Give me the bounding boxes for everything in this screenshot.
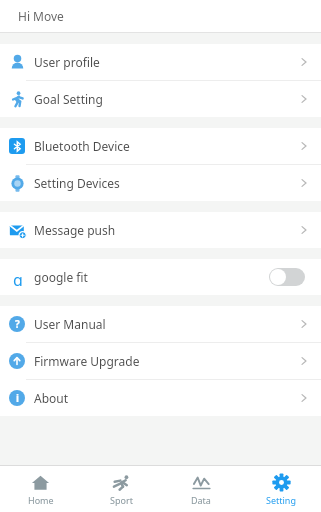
staticText: Goal Setting	[34, 91, 103, 107]
staticText: g	[13, 269, 23, 286]
button[interactable]: Firmware Upgrade	[0, 343, 321, 379]
staticText: User Manual	[34, 316, 106, 332]
button[interactable]: Setting	[241, 473, 321, 506]
staticText: Data	[191, 494, 211, 506]
button[interactable]: User profile	[0, 44, 321, 80]
other: Google fit toggle	[269, 268, 305, 286]
button[interactable]: Home	[0, 473, 81, 506]
staticText: Home	[28, 494, 54, 506]
button[interactable]: Message push	[0, 212, 321, 248]
button[interactable]: Data	[161, 473, 241, 506]
button[interactable]: Sport	[81, 473, 161, 506]
staticText: Setting Devices	[34, 175, 120, 191]
staticText: Message push	[34, 222, 116, 238]
staticText: ?	[15, 317, 20, 331]
button[interactable]: Setting Devices	[0, 165, 321, 201]
button[interactable]: Bluetooth Device	[0, 128, 321, 164]
staticText: Hi Move	[18, 8, 64, 24]
staticText: i	[16, 391, 19, 405]
staticText: About	[34, 390, 69, 406]
staticText: Sport	[110, 494, 133, 506]
staticText: User profile	[34, 54, 100, 70]
staticText: Setting	[266, 494, 296, 506]
button[interactable]: i	[0, 380, 321, 416]
staticText: google fit	[34, 269, 88, 285]
staticText: Firmware Upgrade	[34, 353, 140, 369]
button[interactable]: Goal Setting	[0, 81, 321, 117]
button[interactable]: g	[0, 259, 321, 295]
button[interactable]: ?	[0, 306, 321, 342]
staticText: Bluetooth Device	[34, 138, 130, 154]
